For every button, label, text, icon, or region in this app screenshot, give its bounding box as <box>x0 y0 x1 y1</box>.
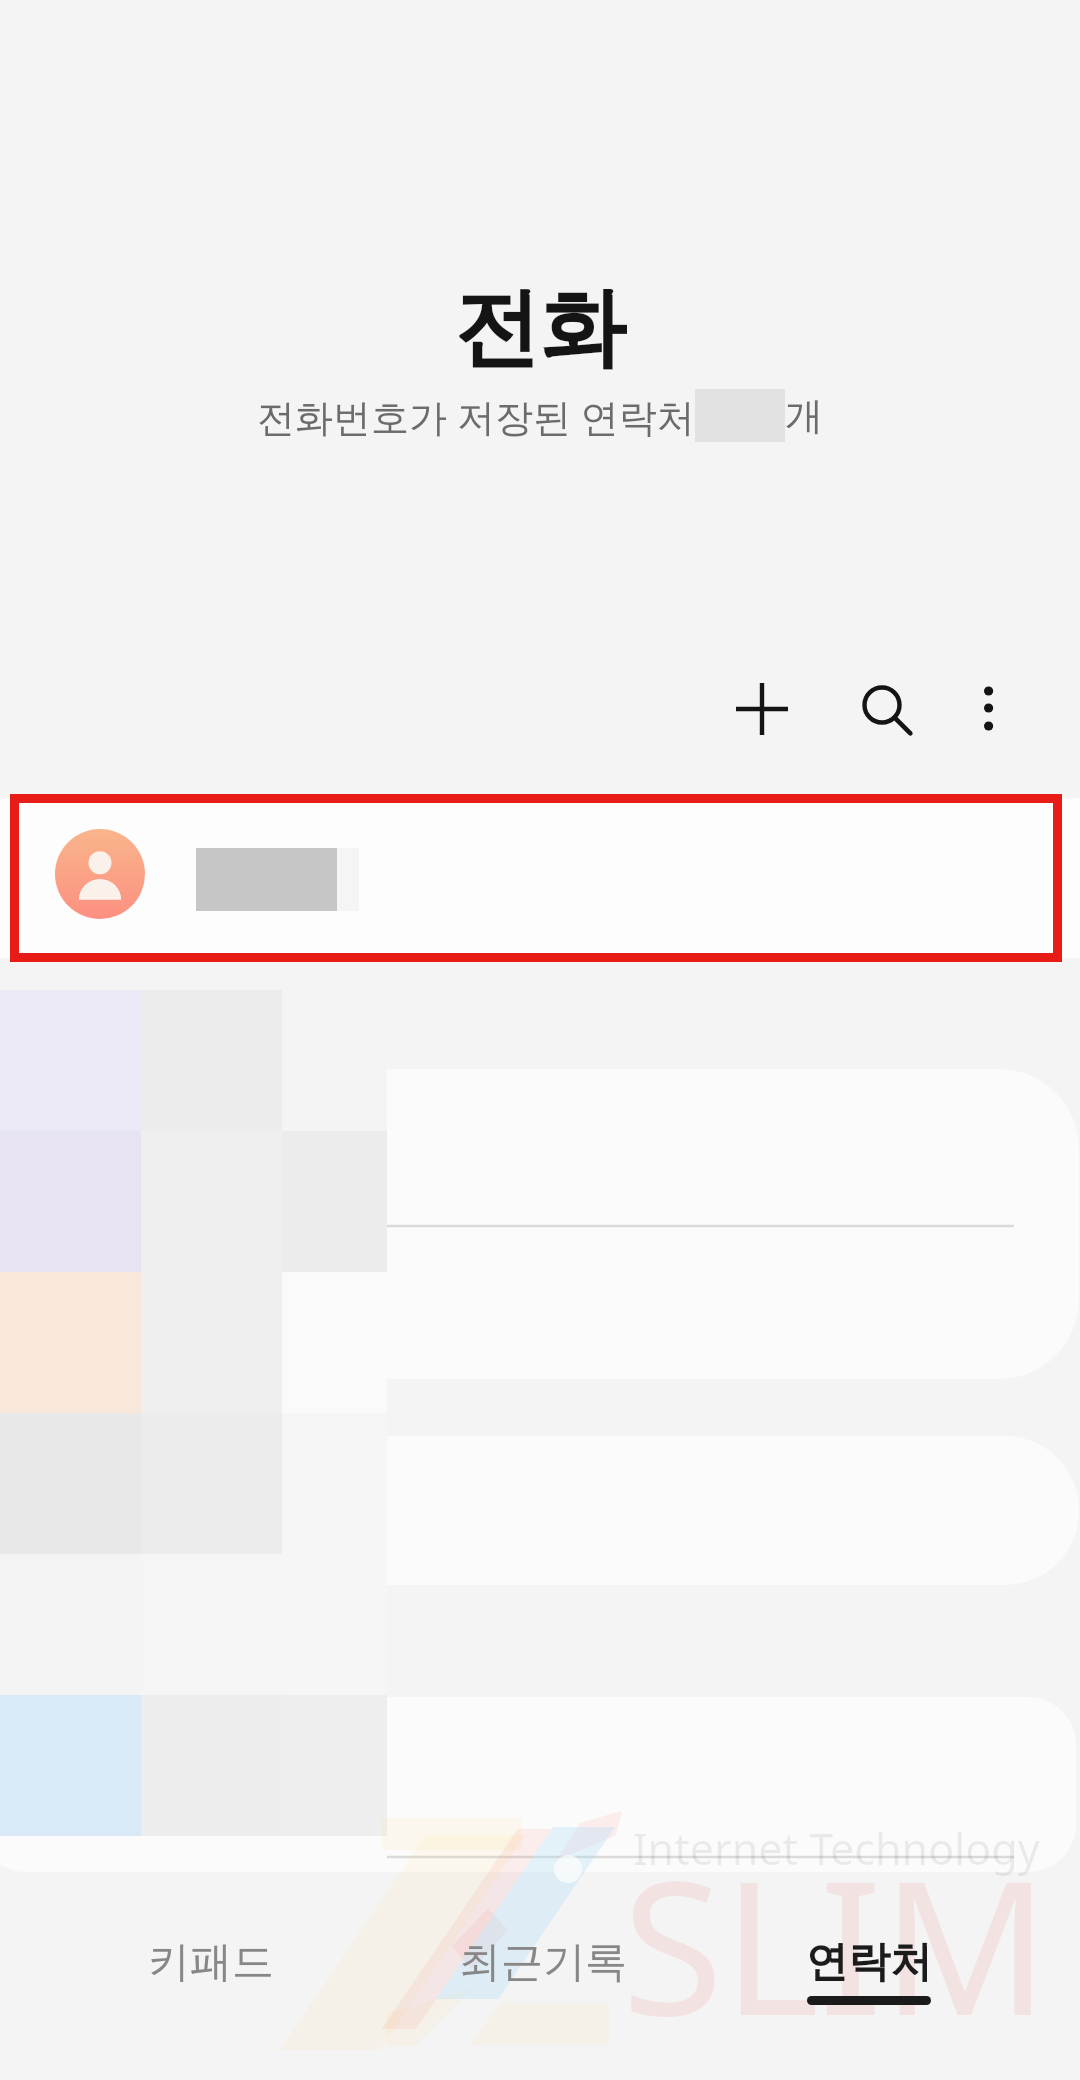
button[interactable]: 연락처 <box>728 1896 1009 2046</box>
staticText: SLIM <box>622 1818 1049 2069</box>
button[interactable]: Add contact <box>730 677 794 741</box>
button[interactable]: 최근기록 <box>402 1896 683 2046</box>
staticText: 개 <box>785 392 823 440</box>
button[interactable] <box>0 798 1080 958</box>
staticText: 최근기록 <box>459 1936 627 1989</box>
staticText: 연락처 <box>806 1936 932 1989</box>
button[interactable]: More options <box>969 678 1009 738</box>
staticText: 키패드 <box>148 1936 274 1989</box>
button[interactable]: Search <box>852 675 912 735</box>
staticText: Internet Technology <box>633 1819 1040 1878</box>
staticText: 전화 <box>454 274 626 382</box>
staticText: 전화번호가 저장된 연락처 <box>257 390 695 442</box>
button[interactable]: 키패드 <box>70 1896 351 2046</box>
